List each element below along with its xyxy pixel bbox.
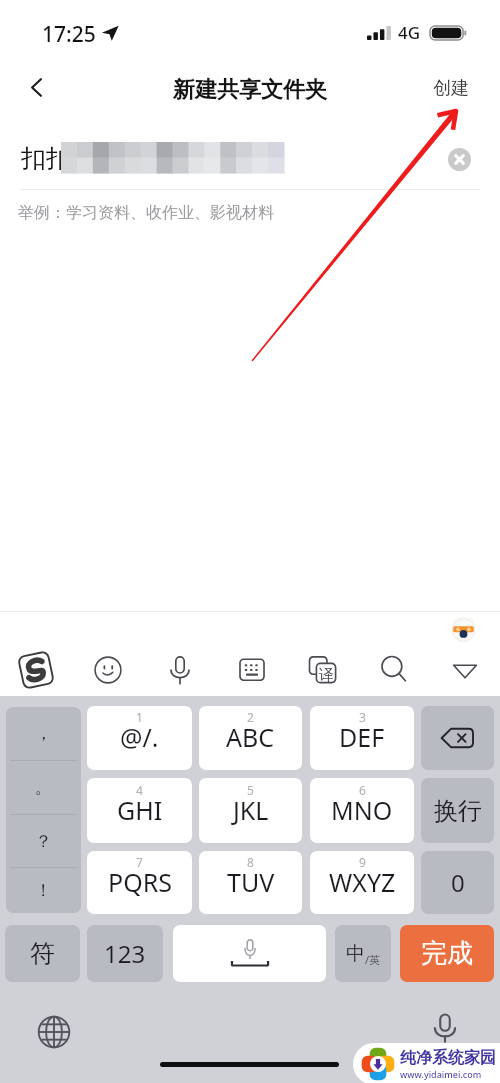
button[interactable]: 123 [87,925,163,982]
staticText: 扣扣 [21,143,71,174]
button[interactable]: Backspace [421,706,494,770]
staticText: 3 [359,709,366,725]
staticText: @/. [120,720,159,754]
staticText: 6 [359,782,366,798]
staticText: 0 [451,866,465,899]
button[interactable]: 4 [87,778,192,843]
staticText: 举例：学习资料、收作业、影视材料 [18,203,274,223]
staticText: 换行 [434,796,482,826]
staticText: 7 [136,854,143,870]
button[interactable]: Translate [287,640,358,700]
button[interactable]: 2 [199,706,302,770]
staticText: 符 [30,938,55,969]
staticText: MNO [331,793,393,827]
staticText: 新建共享文件夹 [173,76,327,104]
button[interactable]: Clear text [443,143,475,175]
button[interactable]: Space [173,925,326,982]
button[interactable]: Back [13,64,59,110]
staticText: 译 [319,666,334,685]
staticText: GHI [117,793,163,827]
staticText: 2 [247,709,254,725]
button[interactable]: 6 [310,778,414,843]
button[interactable]: Emoji [72,640,144,700]
staticText: 8 [247,854,254,870]
staticText: JKL [233,793,269,827]
button[interactable]: 完成 [400,925,494,982]
staticText: 。 [35,777,52,798]
button[interactable]: 符 [5,925,80,982]
staticText: 9 [359,854,366,870]
button[interactable]: Voice input [144,640,216,700]
button[interactable]: Change language [35,1013,73,1051]
button[interactable]: 换行 [421,778,494,843]
staticText: ， [35,723,52,744]
staticText: 中 [346,942,365,966]
staticText: /英 [365,952,381,967]
button[interactable]: 1 [87,706,192,770]
button[interactable]: 创建 [422,66,480,110]
staticText: 4 [136,782,143,798]
staticText: PQRS [108,865,172,899]
button[interactable]: ， [6,707,81,913]
button[interactable]: 3 [310,706,414,770]
button[interactable]: 0 [421,851,494,914]
staticText: 纯净系统家园 [400,1048,496,1068]
staticText: ABC [226,720,275,754]
button[interactable]: Search [358,640,429,700]
staticText: ！ [35,880,52,901]
button[interactable]: 7 [87,851,192,914]
button[interactable]: Sogou input method [0,640,72,700]
button[interactable]: 5 [199,778,302,843]
staticText: 17:25 [42,20,96,49]
staticText: WXYZ [329,865,396,899]
staticText: 创建 [433,77,469,100]
button[interactable]: Hide keyboard [429,640,500,700]
staticText: 123 [104,937,146,970]
staticText: 完成 [421,937,473,970]
button[interactable]: Sticker [448,613,478,643]
button[interactable]: Keyboard settings [216,640,287,700]
button[interactable]: 9 [310,851,414,914]
staticText: ？ [35,831,52,852]
staticText: 4G [398,21,421,44]
button[interactable]: 8 [199,851,302,914]
staticText: 5 [247,782,254,798]
staticText: TUV [227,865,275,899]
staticText: www.yidaimei.com [400,1068,482,1080]
button[interactable]: Voice input [428,1011,462,1045]
staticText: 1 [136,709,143,725]
button[interactable]: Switch Chinese English [335,925,391,982]
staticText: DEF [339,720,385,754]
